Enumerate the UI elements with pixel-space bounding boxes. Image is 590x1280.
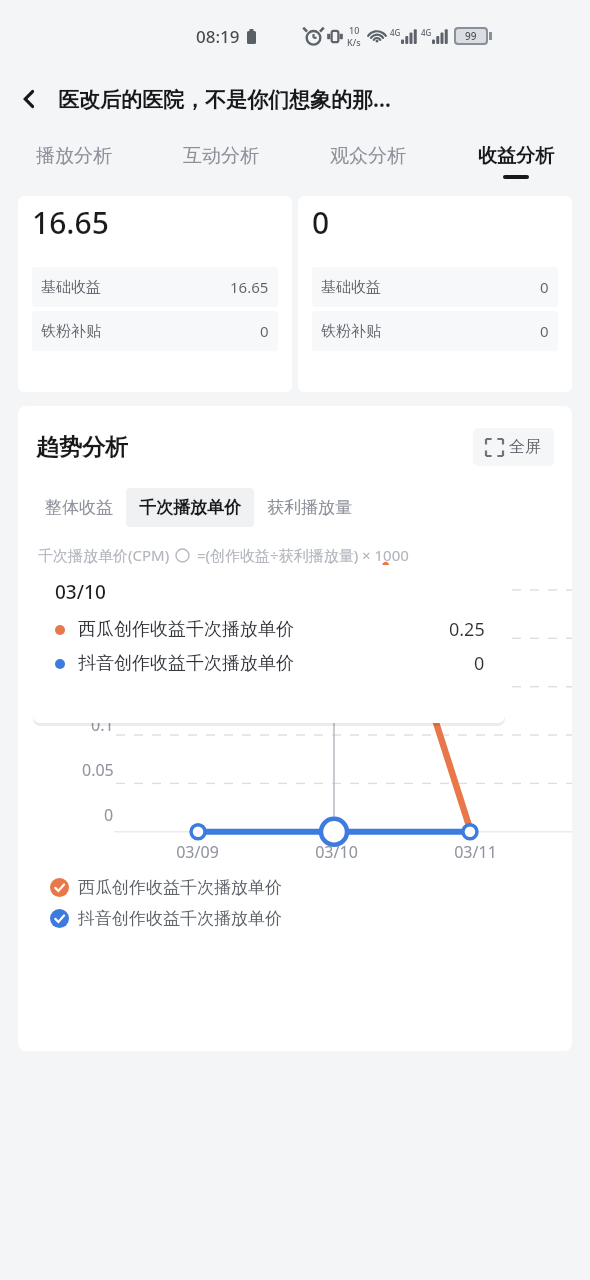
button[interactable]: 整体收益 <box>32 488 126 527</box>
staticText: 99 <box>465 29 477 43</box>
staticText: 抖音创作收益千次播放单价 <box>78 908 282 929</box>
staticText: 趋势分析 <box>36 433 128 462</box>
staticText: 医改后的医院，不是你们想象的那… <box>58 85 582 114</box>
button[interactable]: 播放分析 <box>0 130 147 192</box>
staticText: 0 <box>540 321 549 341</box>
button[interactable]: 千次播放单价 <box>126 488 254 527</box>
staticText: 0 <box>540 277 549 297</box>
button[interactable]: 全屏 <box>473 428 554 466</box>
staticText: 千次播放单价 <box>139 497 241 518</box>
staticText: 0.1 <box>91 714 114 736</box>
staticText: 03/10 <box>55 579 106 605</box>
staticText: 0 <box>474 651 485 676</box>
staticText: 03/10 <box>267 841 406 863</box>
button[interactable]: 西瓜创作收益千次播放单价 <box>50 877 282 898</box>
staticText: 0 <box>104 804 114 826</box>
staticText: 03/11 <box>406 841 545 863</box>
staticText: 08:19 <box>196 25 240 48</box>
staticText: 西瓜创作收益千次播放单价 <box>78 877 282 898</box>
staticText: 10 <box>349 24 360 36</box>
staticText: 获利播放量 <box>267 497 352 518</box>
button[interactable]: 互动分析 <box>147 130 294 192</box>
staticText: =(创作收益÷获利播放量) × 1000 <box>197 545 409 565</box>
staticText: 16.65 <box>32 202 109 243</box>
button[interactable]: Back <box>0 68 58 130</box>
staticText: 4G <box>390 27 401 38</box>
staticText: 抖音创作收益千次播放单价 <box>78 652 294 675</box>
staticText: 观众分析 <box>330 144 406 168</box>
button[interactable]: 获利播放量 <box>254 488 365 527</box>
staticText: 铁粉补贴 <box>41 322 101 341</box>
staticText: 全屏 <box>509 437 541 457</box>
staticText: 铁粉补贴 <box>321 322 381 341</box>
staticText: 03/09 <box>128 841 267 863</box>
staticText: 0.05 <box>82 759 114 781</box>
staticText: 基础收益 <box>321 278 381 297</box>
staticText: K/s <box>347 36 361 48</box>
staticText: 整体收益 <box>45 497 113 518</box>
staticText: 16.65 <box>230 277 269 297</box>
staticText: 0 <box>312 202 330 243</box>
button[interactable]: 观众分析 <box>294 130 442 192</box>
staticText: 0.25 <box>449 617 485 642</box>
staticText: 4G <box>421 27 432 38</box>
staticText: 互动分析 <box>183 144 259 168</box>
staticText: 播放分析 <box>36 144 112 168</box>
staticText: 0 <box>260 321 269 341</box>
staticText: 收益分析 <box>478 144 554 168</box>
staticText: 基础收益 <box>41 278 101 297</box>
button[interactable]: 16.65 <box>18 196 292 392</box>
staticText: 西瓜创作收益千次播放单价 <box>78 618 294 641</box>
button[interactable]: 抖音创作收益千次播放单价 <box>50 908 282 929</box>
button[interactable]: 收益分析 <box>442 130 590 192</box>
staticText: 千次播放单价(CPM) <box>38 545 170 565</box>
button[interactable]: 0 <box>298 196 572 392</box>
